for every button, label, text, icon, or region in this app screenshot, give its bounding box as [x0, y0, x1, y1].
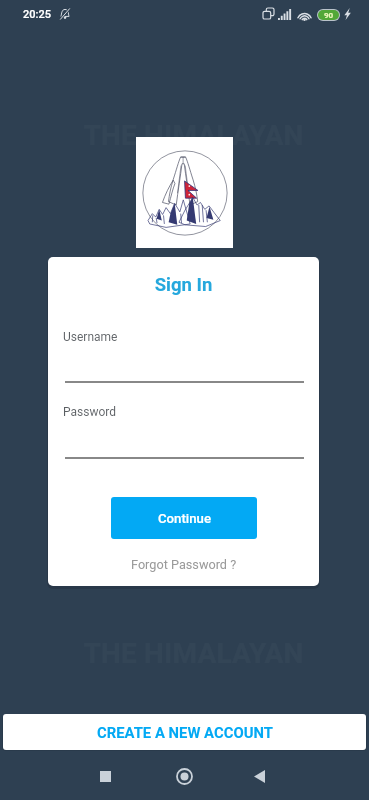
button[interactable]: CREATE A NEW ACCOUNT: [3, 714, 366, 750]
button[interactable]: Continue: [111, 497, 257, 539]
button[interactable]: Home: [176, 768, 193, 785]
staticText: Sign In: [48, 274, 319, 296]
staticText: 20:25: [23, 8, 51, 21]
staticText: THE HIMALAYAN: [9, 119, 369, 152]
staticText: Password: [63, 405, 117, 419]
staticText: 90: [324, 11, 334, 20]
staticText: Continue: [158, 511, 211, 526]
button[interactable]: Back: [254, 770, 265, 783]
staticText: Forgot Password ?: [131, 557, 237, 572]
button[interactable]: Forgot Password ?: [48, 553, 319, 575]
staticText: Username: [63, 330, 118, 344]
staticText: CREATE A NEW ACCOUNT: [97, 724, 273, 741]
